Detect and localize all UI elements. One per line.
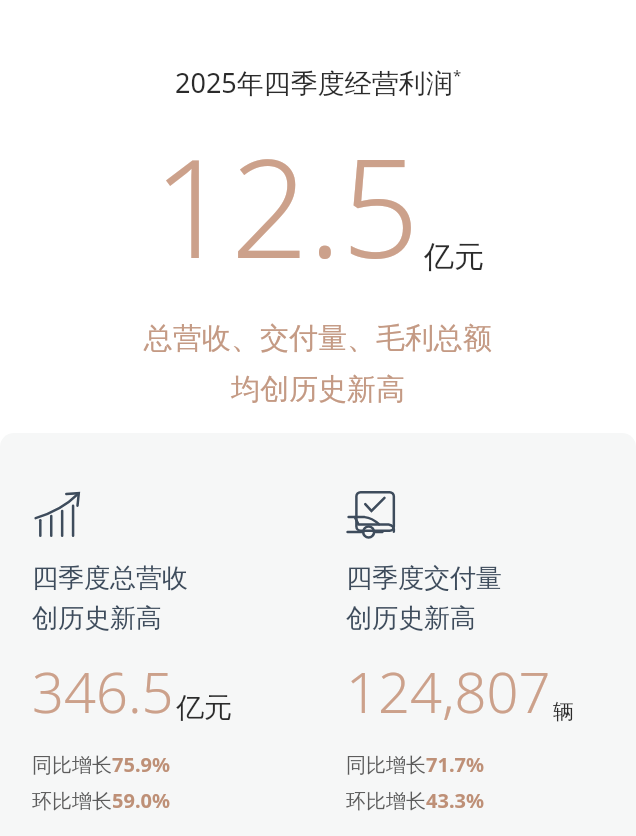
other: Revenue growth chart bbox=[32, 488, 84, 540]
staticText: 346.5 bbox=[32, 653, 174, 729]
staticText: 辆 bbox=[553, 699, 574, 725]
staticText: 创历史新高 bbox=[32, 602, 162, 635]
button[interactable]: Revenue growth chart bbox=[0, 433, 318, 836]
staticText: 同比增长 bbox=[346, 753, 426, 778]
staticText: 59.0% bbox=[112, 787, 170, 814]
staticText: 总营收、交付量、毛利总额 bbox=[144, 320, 492, 357]
staticText: 均创历史新高 bbox=[231, 371, 405, 408]
staticText: 亿元 bbox=[176, 690, 232, 725]
staticText: 创历史新高 bbox=[346, 602, 476, 635]
staticText: 12.5 bbox=[153, 113, 420, 298]
button[interactable]: Vehicle delivery bbox=[318, 433, 636, 836]
staticText: 四季度总营收 bbox=[32, 562, 188, 595]
staticText: 环比增长 bbox=[32, 789, 112, 814]
staticText: * bbox=[453, 65, 462, 85]
staticText: 124,807 bbox=[346, 653, 551, 729]
staticText: 亿元 bbox=[424, 238, 484, 276]
staticText: 2025年四季度经营利润 bbox=[175, 64, 453, 101]
staticText: 同比增长 bbox=[32, 753, 112, 778]
staticText: 75.9% bbox=[112, 751, 170, 778]
other: Vehicle delivery bbox=[346, 488, 398, 540]
staticText: 43.3% bbox=[426, 787, 484, 814]
staticText: 环比增长 bbox=[346, 789, 426, 814]
staticText: 71.7% bbox=[426, 751, 484, 778]
staticText: 四季度交付量 bbox=[346, 562, 502, 595]
